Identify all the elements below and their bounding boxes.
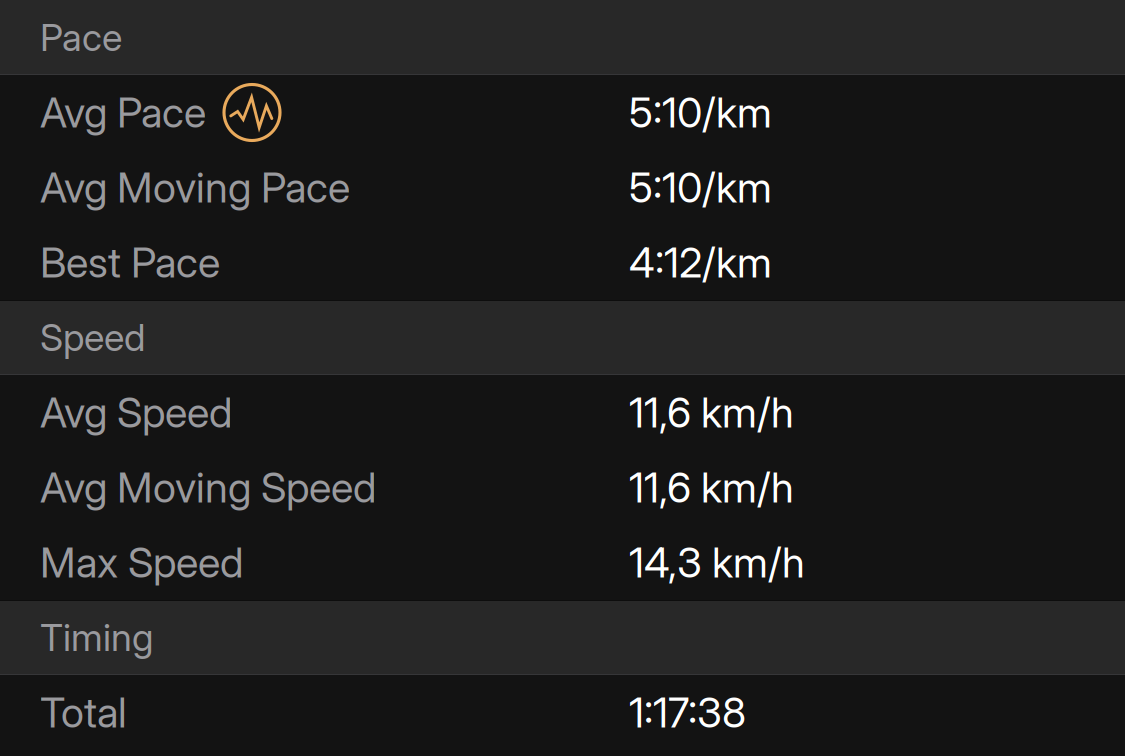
staticText: Avg Moving Pace [40, 162, 350, 212]
staticText: Speed [40, 315, 145, 360]
button[interactable]: Total [0, 675, 1125, 750]
staticText: Best Pace [40, 237, 220, 287]
staticText: 11,6 km/h [629, 462, 794, 512]
staticText: 14,3 km/h [629, 537, 805, 587]
staticText: Total [40, 687, 127, 737]
staticText: Avg Speed [40, 387, 232, 437]
staticText: Avg Pace [40, 87, 206, 137]
staticText: 5:10/km [629, 162, 772, 212]
staticText: Avg Moving Speed [40, 462, 376, 512]
staticText: Pace [40, 15, 122, 60]
button[interactable]: Best Pace [0, 225, 1125, 300]
staticText: 4:12/km [629, 237, 772, 287]
staticText: 5:10/km [629, 87, 772, 137]
staticText: 11,6 km/h [629, 387, 794, 437]
staticText: Timing [40, 615, 154, 660]
staticText: 1:17:38 [629, 687, 746, 737]
button[interactable]: Avg Moving Speed [0, 450, 1125, 525]
button[interactable]: Max Speed [0, 525, 1125, 600]
button[interactable]: Avg Speed [0, 375, 1125, 450]
button[interactable]: Avg Pace [0, 75, 1125, 150]
button[interactable]: Avg Moving Pace [0, 150, 1125, 225]
staticText: Max Speed [40, 537, 243, 587]
